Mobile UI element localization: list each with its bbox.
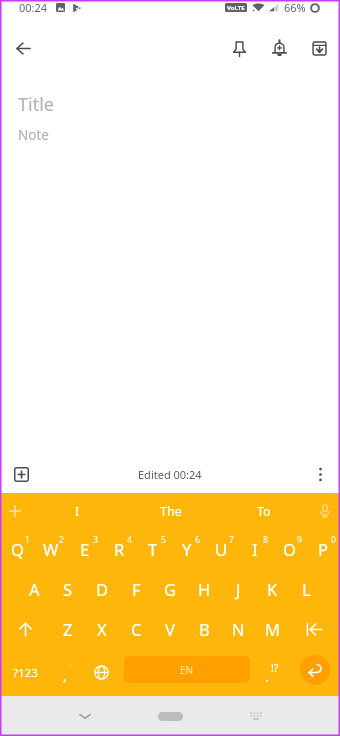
button[interactable]: Voice input xyxy=(310,493,340,529)
staticText: 0 xyxy=(331,534,336,546)
staticText: V xyxy=(165,618,175,640)
staticText: X xyxy=(97,618,107,640)
staticText: P xyxy=(318,538,328,560)
staticText: Title xyxy=(18,92,54,117)
button[interactable]: R xyxy=(102,529,136,569)
button[interactable]: Archive xyxy=(299,28,339,68)
staticText: U xyxy=(215,538,228,560)
staticText: The xyxy=(160,503,182,520)
button[interactable]: Change language xyxy=(84,649,118,696)
button[interactable]: T xyxy=(136,529,170,569)
staticText: S xyxy=(63,578,73,600)
staticText: K xyxy=(267,578,278,600)
button[interactable]: A xyxy=(17,569,51,609)
button[interactable]: More options xyxy=(300,455,340,493)
staticText: ?123 xyxy=(13,665,38,681)
button[interactable]: Q xyxy=(0,529,34,569)
staticText: 66% xyxy=(284,0,306,15)
button[interactable]: To xyxy=(217,493,310,529)
button[interactable]: Space xyxy=(124,656,250,683)
button[interactable]: F xyxy=(119,569,153,609)
staticText: A xyxy=(29,578,40,600)
staticText: D xyxy=(96,578,109,600)
staticText: 2 xyxy=(59,534,64,546)
staticText: 6 xyxy=(195,534,200,546)
button[interactable]: X xyxy=(85,609,119,649)
staticText: EN xyxy=(180,663,194,677)
staticText: Z xyxy=(63,618,73,640)
staticText: L xyxy=(302,578,311,600)
staticText: Edited 00:24 xyxy=(138,467,202,482)
button[interactable]: O xyxy=(272,529,306,569)
button[interactable]: Punctuation xyxy=(254,649,290,696)
staticText: W xyxy=(43,538,59,560)
staticText: 5 xyxy=(161,534,166,546)
staticText: G xyxy=(164,578,177,600)
button[interactable]: G xyxy=(153,569,187,609)
button[interactable]: Z xyxy=(51,609,85,649)
staticText: VoLTE xyxy=(227,4,245,12)
button[interactable]: D xyxy=(85,569,119,609)
button[interactable]: P xyxy=(306,529,340,569)
staticText: M xyxy=(265,618,280,640)
button[interactable]: V xyxy=(153,609,187,649)
button[interactable]: B xyxy=(187,609,221,649)
staticText: I xyxy=(75,503,80,520)
button[interactable]: Comma xyxy=(48,649,86,696)
button[interactable]: Hide keyboard xyxy=(42,696,128,736)
button[interactable]: Reminder xyxy=(259,28,299,68)
button[interactable]: Pin xyxy=(219,28,259,68)
staticText: Q xyxy=(11,538,24,560)
staticText: C xyxy=(131,618,142,640)
staticText: To xyxy=(257,503,271,520)
staticText: . xyxy=(265,667,269,686)
staticText: Note xyxy=(18,126,49,144)
button[interactable]: J xyxy=(221,569,255,609)
staticText: J xyxy=(236,578,241,600)
button[interactable]: K xyxy=(255,569,289,609)
button[interactable]: Switch keyboard xyxy=(213,696,298,736)
staticText: R xyxy=(114,538,125,560)
button[interactable]: The xyxy=(124,493,217,529)
button[interactable]: Symbols xyxy=(2,649,48,696)
button[interactable]: Delete xyxy=(289,609,340,649)
button[interactable]: Shift xyxy=(0,609,51,649)
staticText: H xyxy=(198,578,211,600)
staticText: I xyxy=(252,538,258,560)
button[interactable]: E xyxy=(68,529,102,569)
staticText: E xyxy=(80,538,90,560)
button[interactable]: H xyxy=(187,569,221,609)
button[interactable]: C xyxy=(119,609,153,649)
button[interactable]: Clipboard xyxy=(0,493,30,529)
staticText: O xyxy=(283,538,296,560)
staticText: B xyxy=(199,618,210,640)
staticText: F xyxy=(132,578,141,600)
staticText: 3 xyxy=(93,534,98,546)
staticText: !? xyxy=(271,661,279,675)
button[interactable]: Add xyxy=(1,455,41,493)
button[interactable]: I xyxy=(30,493,124,529)
button[interactable]: Y xyxy=(170,529,204,569)
button[interactable]: Enter xyxy=(300,655,330,685)
staticText: T xyxy=(148,538,158,560)
staticText: 00:24 xyxy=(19,0,48,15)
button[interactable]: N xyxy=(221,609,255,649)
button[interactable]: U xyxy=(204,529,238,569)
staticText: 1 xyxy=(25,534,30,546)
button[interactable]: M xyxy=(255,609,289,649)
button[interactable]: I xyxy=(238,529,272,569)
staticText: 9 xyxy=(297,534,302,546)
button[interactable]: L xyxy=(289,569,323,609)
staticText: , xyxy=(63,666,67,685)
button[interactable]: W xyxy=(34,529,68,569)
button[interactable]: Back xyxy=(3,28,43,68)
staticText: Y xyxy=(182,538,192,560)
staticText: 4 xyxy=(127,534,132,546)
staticText: N xyxy=(232,618,245,640)
staticText: 8 xyxy=(263,534,268,546)
button[interactable]: Home xyxy=(128,696,213,736)
staticText: 7 xyxy=(229,534,234,546)
button[interactable]: S xyxy=(51,569,85,609)
